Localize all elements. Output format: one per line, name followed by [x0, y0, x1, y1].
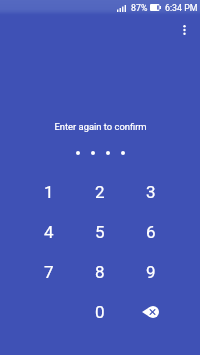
staticText: 8: [95, 262, 105, 282]
button[interactable]: 8: [74, 252, 125, 292]
staticText: Enter again to confirm: [54, 121, 147, 132]
staticText: 4: [44, 222, 54, 242]
other: Delete: [139, 302, 163, 322]
button[interactable]: 7: [23, 252, 74, 292]
staticText: 7: [44, 262, 54, 282]
staticText: 9: [146, 262, 156, 282]
button[interactable]: Delete: [125, 292, 176, 332]
button[interactable]: 0: [74, 292, 125, 332]
button[interactable]: 9: [125, 252, 176, 292]
staticText: 6: [146, 222, 156, 242]
staticText: 87%: [131, 3, 148, 13]
button[interactable]: More options: [170, 16, 198, 44]
staticText: 2: [95, 182, 105, 202]
button[interactable]: 3: [125, 172, 176, 212]
button[interactable]: 5: [74, 212, 125, 252]
staticText: 0: [95, 302, 105, 322]
button[interactable]: 4: [23, 212, 74, 252]
staticText: 3: [146, 182, 156, 202]
staticText: 5: [95, 222, 105, 242]
button[interactable]: 6: [125, 212, 176, 252]
button[interactable]: 2: [74, 172, 125, 212]
staticText: 1: [44, 182, 54, 202]
staticText: 6:34 PM: [165, 3, 198, 13]
button[interactable]: 1: [23, 172, 74, 212]
